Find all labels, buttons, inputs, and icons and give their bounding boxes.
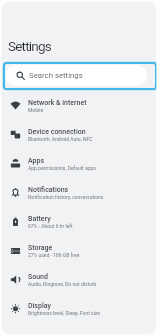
staticText: Network & internet [28,99,87,107]
staticText: Battery [28,215,51,223]
button[interactable]: Network & internet [0,91,160,120]
staticText: Settings [8,38,51,54]
staticText: Notification history, conversations [28,194,104,200]
staticText: Mobile [28,107,44,113]
button[interactable]: Notifications [0,178,160,207]
button[interactable]: Display [0,294,160,323]
staticText: Display [28,302,51,310]
button[interactable]: Apps [0,149,160,178]
staticText: 27% used - 186 GB free [28,252,80,258]
button[interactable]: Device connection [0,120,160,149]
button[interactable]: Search settings [5,65,147,86]
staticText: Sound [28,273,48,281]
staticText: Device connection [28,128,86,136]
button[interactable]: Battery [0,207,160,236]
button[interactable]: Sound [0,265,160,294]
staticText: Bluetooth, Android Auto, NFC [28,136,93,142]
button[interactable]: Storage [0,236,160,265]
staticText: App permissions, Default apps [28,165,96,171]
staticText: Apps [28,157,44,165]
staticText: Audio, Ringtone, Do not disturb [28,281,97,287]
staticText: Brightness level, Sleep, Font size [28,310,100,316]
staticText: Search settings [29,71,83,80]
staticText: 67% - About 6 hr left [28,223,73,229]
staticText: Notifications [28,186,69,194]
staticText: Storage [28,244,53,252]
